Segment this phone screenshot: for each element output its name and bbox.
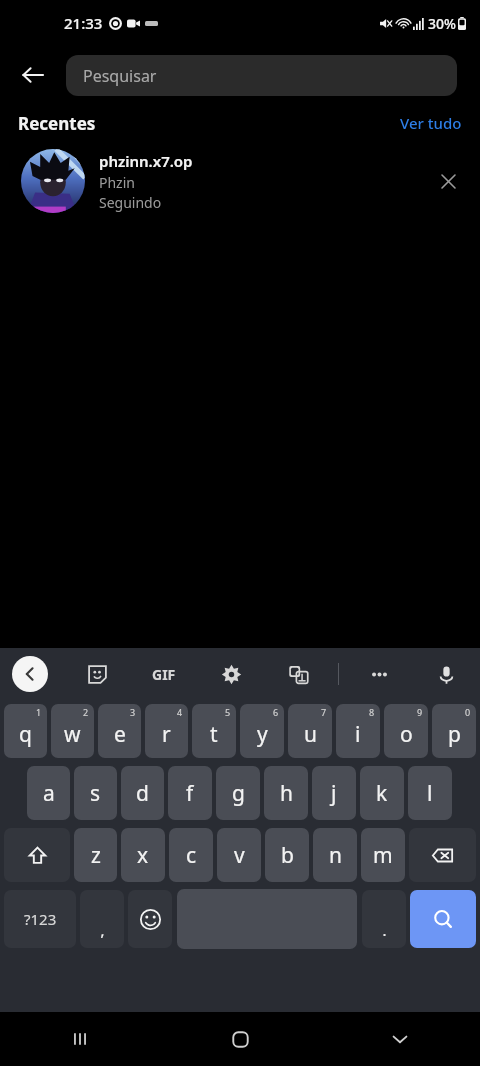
button[interactable]: 1 [4,704,47,758]
staticText: k [376,779,388,808]
button[interactable]: g [216,766,260,820]
staticText: 6 [273,706,279,718]
staticText: d [136,779,149,808]
button[interactable]: Remover [426,159,470,203]
staticText: x [137,841,149,870]
button[interactable]: Apagar [409,828,476,882]
button[interactable]: k [360,766,404,820]
button[interactable]: Sticker [79,656,115,692]
staticText: w [64,720,81,749]
button[interactable]: j [312,766,356,820]
button[interactable]: Fechar barra [12,656,48,692]
button[interactable]: Voltar [0,46,66,104]
staticText: p [448,720,461,749]
button[interactable]: phzinn.x7.op [0,142,480,220]
staticText: m [373,841,393,870]
button[interactable]: Configurações [213,656,249,692]
button[interactable]: . [362,890,406,948]
staticText: a [43,779,55,808]
staticText: l [427,779,433,808]
staticText: 2 [83,706,89,718]
staticText: . [382,920,387,940]
staticText: o [400,720,413,749]
button[interactable]: 2 [51,704,94,758]
button[interactable]: GIF [146,656,182,692]
button[interactable]: v [217,828,261,882]
staticText: q [19,720,32,749]
staticText: v [234,841,245,870]
button[interactable]: Mais [361,656,397,692]
button[interactable]: x [121,828,165,882]
button[interactable]: Shift [4,828,70,882]
staticText: ?123 [24,909,57,929]
staticText: 21:33 [64,13,103,33]
staticText: 9 [417,706,423,718]
button[interactable]: a [27,766,70,820]
staticText: Phzin [99,173,135,192]
button[interactable]: b [265,828,309,882]
button[interactable]: Início [160,1012,320,1066]
staticText: j [331,779,337,808]
button[interactable]: Pesquisar [410,890,476,948]
staticText: n [329,841,342,870]
button[interactable]: 6 [240,704,284,758]
button[interactable]: h [264,766,308,820]
button[interactable]: 7 [288,704,332,758]
button[interactable]: Traduzir [280,656,316,692]
button[interactable]: 5 [192,704,236,758]
staticText: 3 [130,706,136,718]
button[interactable]: 0 [432,704,476,758]
staticText: Pesquisar [83,65,157,87]
button[interactable]: l [408,766,452,820]
staticText: Ver tudo [400,113,462,133]
button[interactable]: Microfone [428,656,464,692]
staticText: 8 [369,706,375,718]
button[interactable]: f [168,766,212,820]
button[interactable]: , [80,890,124,948]
staticText: t [210,720,218,749]
staticText: Seguindo [99,193,162,212]
staticText: y [257,720,268,749]
button[interactable]: Ver tudo [400,113,462,133]
staticText: 7 [321,706,327,718]
staticText: e [114,720,126,749]
button[interactable]: ?123 [4,890,76,948]
button[interactable]: Recentes [0,1012,160,1066]
button[interactable]: s [74,766,117,820]
button[interactable]: Fechar teclado [320,1012,480,1066]
button[interactable]: Pesquisar [66,55,457,96]
staticText: b [281,841,294,870]
button[interactable]: 9 [384,704,428,758]
button[interactable]: Emoji [128,890,172,948]
button[interactable]: c [169,828,213,882]
staticText: r [162,720,171,749]
staticText: phzinn.x7.op [99,151,193,171]
staticText: h [280,779,293,808]
staticText: , [100,920,105,940]
button[interactable]: 8 [336,704,380,758]
staticText: 4 [177,706,183,718]
staticText: c [186,841,197,870]
staticText: Recentes [18,112,96,135]
button[interactable]: d [121,766,164,820]
staticText: u [304,720,317,749]
staticText: 5 [225,706,231,718]
staticText: 0 [465,706,471,718]
staticText: s [90,779,101,808]
staticText: z [91,841,101,870]
button[interactable]: z [74,828,117,882]
staticText: 30% [428,14,456,33]
staticText: g [232,779,245,808]
staticText: f [186,779,194,808]
staticText: GIF [152,665,176,684]
button[interactable]: n [313,828,357,882]
button[interactable]: 4 [145,704,188,758]
button[interactable]: 3 [98,704,141,758]
button[interactable]: m [361,828,405,882]
staticText: 1 [36,706,42,718]
staticText: i [355,720,361,749]
